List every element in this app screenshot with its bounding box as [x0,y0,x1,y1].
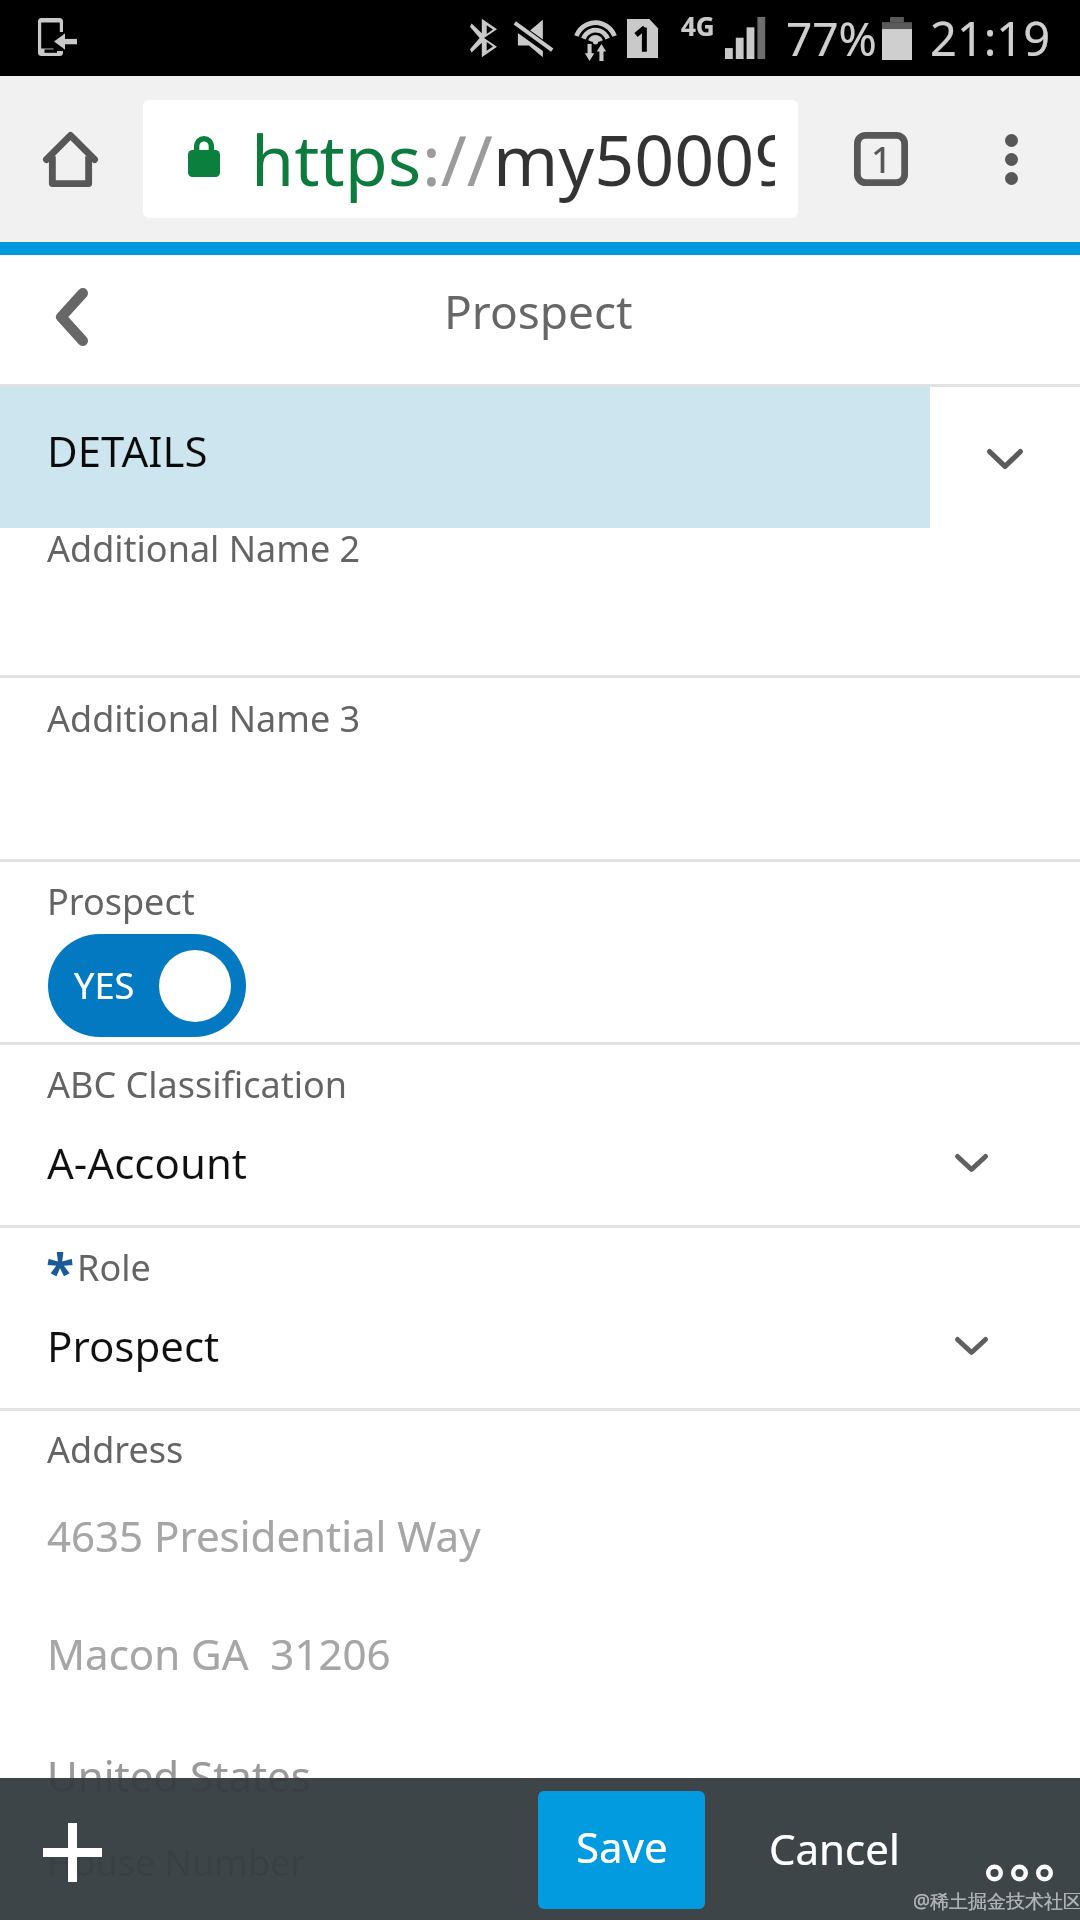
staticText: Additional Name 3 [47,694,361,743]
staticText: my50009 [493,112,775,206]
button[interactable]: https [143,100,798,218]
staticText: 4G [681,8,715,43]
staticText: * [46,1236,75,1307]
staticText: Macon GA 31206 [47,1625,391,1682]
button[interactable]: ABC Classification [0,1045,1080,1228]
button[interactable]: Save [538,1791,705,1909]
staticText: 21:19 [930,6,1051,70]
staticText: Role [77,1243,151,1292]
button[interactable]: More [986,1864,1054,1882]
button[interactable]: Home [20,109,120,209]
staticText: A-Account [47,1134,248,1191]
staticText: 1 [871,135,892,184]
staticText: Prospect [47,877,195,926]
button[interactable]: Cancel [752,1791,916,1909]
button[interactable]: Back [22,267,122,367]
staticText: House Number [47,1838,306,1887]
staticText: 4635 Presidential Way [47,1507,481,1564]
staticText: United States [47,1747,311,1804]
staticText: https [251,112,422,206]
staticText: Address [47,1425,184,1474]
button[interactable]: Additional Name 3 [0,678,1080,862]
staticText: ABC Classification [47,1060,347,1109]
staticText: YES [74,961,135,1010]
staticText: Additional Name 2 [47,524,361,573]
button[interactable]: More options [961,109,1061,209]
button[interactable]: DETAILS [0,387,1080,528]
staticText: Prospect [444,280,633,343]
staticText: 77% [786,7,877,70]
staticText: DETAILS [47,422,208,479]
button[interactable]: Tabs [826,104,936,214]
staticText: Cancel [769,1820,900,1877]
staticText: United States [47,1747,311,1804]
button[interactable]: Add [22,1802,122,1902]
staticText: Prospect [47,1317,220,1374]
staticText: Save [576,1818,668,1875]
button[interactable]: YES [48,934,246,1037]
staticText: @稀土掘金技术社区 [913,1888,1080,1914]
staticText: :// [422,112,493,206]
button[interactable]: * [0,1228,1080,1411]
